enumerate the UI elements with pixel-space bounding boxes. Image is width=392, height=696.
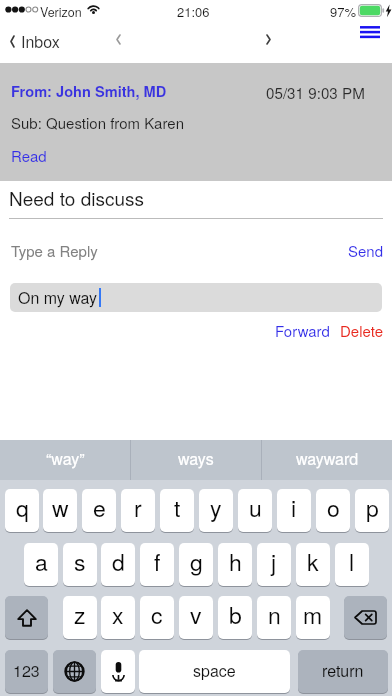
staticText: k bbox=[307, 545, 319, 578]
button[interactable]: Next message bbox=[261, 29, 276, 50]
staticText: “way” bbox=[46, 447, 85, 470]
button[interactable]: 123 bbox=[5, 650, 48, 693]
staticText: z bbox=[74, 598, 86, 631]
button[interactable]: w bbox=[43, 489, 77, 532]
staticText: q bbox=[16, 491, 29, 524]
button[interactable]: space bbox=[139, 650, 290, 693]
button[interactable]: Menu bbox=[356, 22, 384, 44]
staticText: 123 bbox=[13, 659, 40, 682]
staticText: n bbox=[268, 598, 281, 631]
staticText: Type a Reply bbox=[11, 240, 98, 261]
button[interactable]: u bbox=[238, 489, 272, 532]
button[interactable]: m bbox=[296, 596, 330, 639]
staticText: f bbox=[154, 545, 161, 578]
button[interactable]: Inbox bbox=[6, 26, 64, 57]
button[interactable]: b bbox=[218, 596, 252, 639]
button[interactable]: “way” bbox=[0, 440, 130, 480]
staticText: a bbox=[35, 545, 48, 578]
staticText: Read bbox=[11, 145, 47, 166]
staticText: Need to discuss bbox=[9, 184, 144, 211]
button[interactable]: a bbox=[24, 543, 58, 586]
staticText: t bbox=[174, 491, 181, 524]
button[interactable]: Dictate bbox=[101, 650, 135, 693]
staticText: 97% bbox=[330, 2, 357, 21]
staticText: d bbox=[112, 545, 125, 578]
button[interactable]: q bbox=[5, 489, 39, 532]
button[interactable]: d bbox=[101, 543, 135, 586]
staticText: o bbox=[327, 491, 340, 524]
button[interactable]: k bbox=[296, 543, 330, 586]
button[interactable]: l bbox=[335, 543, 369, 586]
button[interactable]: n bbox=[257, 596, 291, 639]
button[interactable]: s bbox=[63, 543, 97, 586]
staticText: h bbox=[229, 545, 242, 578]
button[interactable]: r bbox=[121, 489, 155, 532]
staticText: Send bbox=[348, 240, 384, 261]
button[interactable]: Backspace bbox=[344, 596, 387, 639]
staticText: wayward bbox=[296, 447, 359, 470]
staticText: 05/31 9:03 PM bbox=[266, 82, 365, 104]
button[interactable]: j bbox=[257, 543, 291, 586]
staticText: Inbox bbox=[21, 30, 60, 53]
button[interactable]: x bbox=[101, 596, 135, 639]
button[interactable]: Shift bbox=[5, 596, 48, 639]
button[interactable]: z bbox=[63, 596, 97, 639]
button[interactable]: return bbox=[298, 650, 388, 693]
button[interactable]: e bbox=[82, 489, 116, 532]
staticText: return bbox=[322, 659, 364, 682]
staticText: r bbox=[134, 491, 142, 524]
button[interactable]: On my way bbox=[10, 283, 382, 312]
staticText: w bbox=[52, 491, 69, 524]
button[interactable]: c bbox=[140, 596, 174, 639]
button[interactable]: Delete bbox=[337, 317, 386, 344]
button[interactable]: i bbox=[277, 489, 311, 532]
staticText: u bbox=[249, 491, 262, 524]
button[interactable]: p bbox=[355, 489, 389, 532]
staticText: On my way bbox=[18, 286, 98, 309]
button[interactable]: Forward bbox=[272, 317, 333, 344]
staticText: i bbox=[291, 491, 297, 524]
staticText: Delete bbox=[340, 320, 383, 341]
staticText: v bbox=[190, 598, 202, 631]
button[interactable]: g bbox=[179, 543, 213, 586]
staticText: b bbox=[229, 598, 242, 631]
button[interactable]: y bbox=[199, 489, 233, 532]
button[interactable]: ways bbox=[131, 440, 261, 480]
staticText: g bbox=[190, 545, 203, 578]
button[interactable]: Previous message bbox=[111, 29, 126, 50]
staticText: s bbox=[74, 545, 86, 578]
button[interactable]: t bbox=[160, 489, 194, 532]
staticText: p bbox=[366, 491, 379, 524]
staticText: space bbox=[193, 659, 236, 682]
staticText: 21:06 bbox=[177, 2, 210, 21]
staticText: Verizon bbox=[40, 3, 82, 21]
staticText: Sub: Question from Karen bbox=[11, 112, 184, 133]
staticText: m bbox=[303, 598, 323, 631]
staticText: e bbox=[93, 491, 106, 524]
button[interactable]: Next keyboard bbox=[53, 650, 96, 693]
staticText: x bbox=[112, 598, 124, 631]
button[interactable]: Send bbox=[345, 237, 387, 264]
button[interactable]: v bbox=[179, 596, 213, 639]
staticText: j bbox=[271, 545, 277, 578]
button[interactable]: From: John Smith, MD bbox=[0, 63, 392, 181]
staticText: From: John Smith, MD bbox=[11, 81, 167, 102]
staticText: c bbox=[151, 598, 163, 631]
button[interactable]: f bbox=[140, 543, 174, 586]
staticText: y bbox=[210, 491, 222, 524]
staticText: l bbox=[349, 545, 355, 578]
button[interactable]: wayward bbox=[262, 440, 392, 480]
button[interactable]: h bbox=[218, 543, 252, 586]
staticText: ways bbox=[178, 447, 214, 470]
staticText: Forward bbox=[275, 320, 330, 341]
button[interactable]: o bbox=[316, 489, 350, 532]
